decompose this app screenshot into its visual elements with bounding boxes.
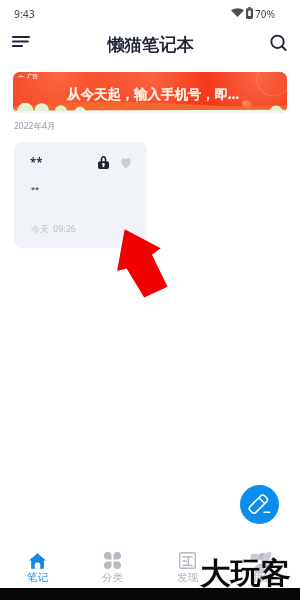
- staticText: 我的: [252, 571, 273, 584]
- staticText: 今天: [31, 223, 49, 234]
- staticText: 笔记: [27, 571, 48, 584]
- button[interactable]: **: [14, 142, 147, 248]
- staticText: 9:43: [14, 7, 35, 21]
- button[interactable]: 我的: [225, 541, 300, 588]
- button[interactable]: 笔记: [0, 541, 75, 588]
- button[interactable]: 发现: [150, 541, 225, 588]
- staticText: 广告: [27, 73, 38, 80]
- staticText: **: [31, 184, 40, 194]
- button[interactable]: Menu: [5, 27, 36, 58]
- button[interactable]: 广告: [13, 72, 287, 113]
- staticText: **: [30, 155, 43, 171]
- staticText: 分类: [102, 571, 123, 584]
- button[interactable]: New note: [240, 485, 279, 524]
- staticText: 从今天起，输入手机号，即...: [67, 85, 239, 103]
- staticText: 70%: [255, 7, 275, 21]
- staticText: 懒猫笔记本: [107, 34, 194, 56]
- staticText: 09:26: [53, 222, 77, 234]
- staticText: 发现: [177, 571, 198, 584]
- button[interactable]: Search: [263, 27, 294, 58]
- staticText: 大玩客: [200, 555, 290, 593]
- staticText: 2022年4月: [14, 120, 56, 132]
- button[interactable]: 分类: [75, 541, 150, 588]
